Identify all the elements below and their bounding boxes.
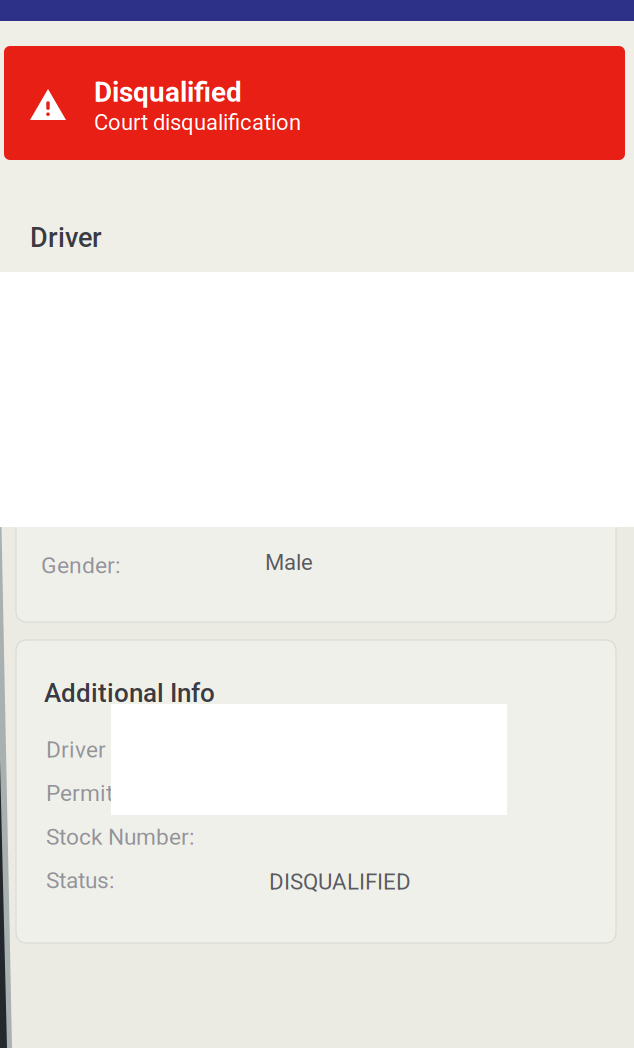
button[interactable]: Disqualified bbox=[4, 46, 625, 160]
staticText: DISQUALIFIED bbox=[269, 869, 411, 895]
staticText: Male bbox=[265, 549, 313, 575]
staticText: Status: bbox=[46, 867, 114, 894]
staticText: Permit bbox=[46, 780, 113, 807]
staticText: Driver bbox=[30, 222, 102, 254]
staticText: Court disqualification bbox=[94, 110, 301, 135]
staticText: Additional Info bbox=[44, 678, 215, 708]
staticText: Stock Number: bbox=[46, 824, 194, 850]
staticText: Driver bbox=[46, 736, 106, 763]
staticText: Gender: bbox=[41, 552, 121, 579]
staticText: Disqualified bbox=[94, 76, 242, 109]
